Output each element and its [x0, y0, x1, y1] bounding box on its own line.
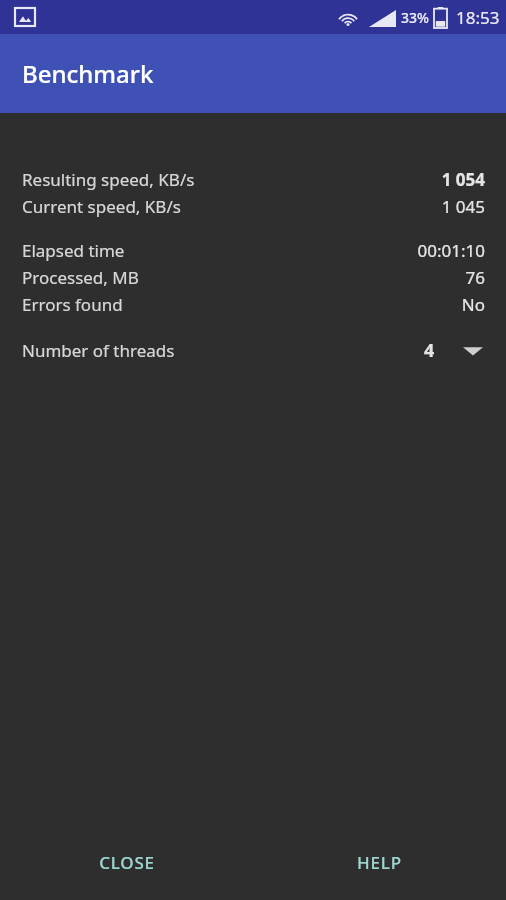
staticText: 4 [424, 338, 435, 363]
staticText: Current speed, KB/s [22, 195, 181, 218]
staticText: 1 054 [441, 168, 485, 191]
staticText: Elapsed time [22, 239, 125, 262]
staticText: 1 045 [441, 195, 485, 218]
staticText: Number of threads [22, 339, 175, 362]
staticText: HELP [357, 851, 402, 874]
staticText: 76 [465, 266, 485, 289]
staticText: CLOSE [99, 851, 155, 874]
staticText: Resulting speed, KB/s [22, 168, 195, 191]
staticText: 33% [401, 8, 429, 27]
staticText: Errors found [22, 293, 123, 316]
staticText: 00:01:10 [417, 239, 485, 262]
staticText: 18:53 [456, 6, 500, 29]
button[interactable]: CLOSE [0, 824, 253, 900]
button[interactable]: HELP [253, 824, 506, 900]
staticText: No [461, 293, 485, 316]
button[interactable]: Select number of threads [422, 338, 485, 363]
staticText: Processed, MB [22, 266, 139, 289]
staticText: Benchmark [22, 57, 154, 90]
